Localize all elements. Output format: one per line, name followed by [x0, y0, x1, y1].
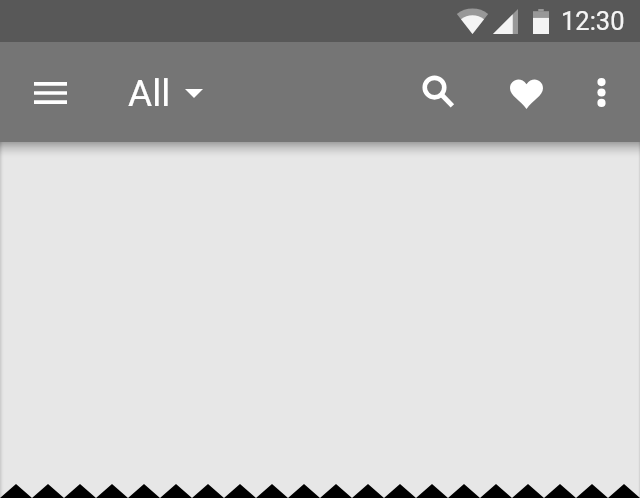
staticText: 12:30 — [561, 6, 625, 36]
button[interactable]: All — [128, 57, 203, 129]
button[interactable]: More options — [573, 64, 629, 120]
button[interactable]: Open navigation drawer — [22, 65, 78, 121]
button[interactable]: Search — [412, 64, 468, 120]
button[interactable]: Favorites — [498, 64, 554, 120]
staticText: All — [128, 72, 171, 115]
